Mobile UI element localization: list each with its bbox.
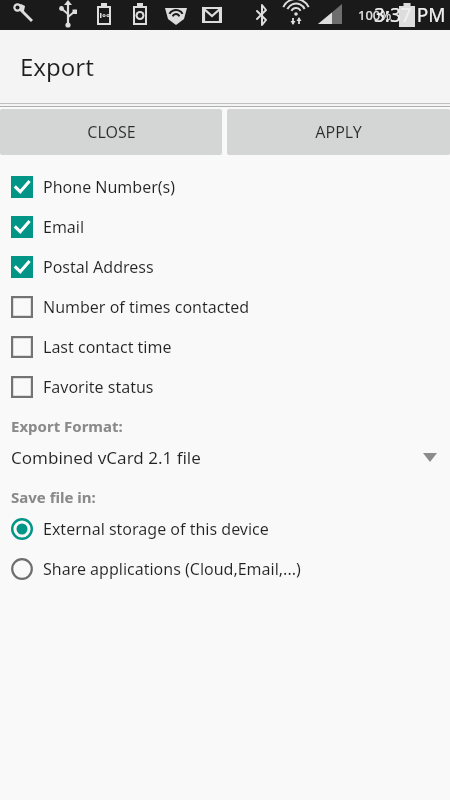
button[interactable]: Combined vCard 2.1 file	[0, 438, 450, 476]
button[interactable]: Last contact time	[0, 327, 450, 367]
staticText: 100%	[358, 6, 392, 24]
staticText: Number of times contacted	[43, 296, 250, 318]
staticText: Last contact time	[43, 336, 172, 358]
button[interactable]: Postal Address	[0, 247, 450, 287]
staticText: Favorite status	[43, 376, 154, 398]
button[interactable]: Phone Number(s)	[0, 167, 450, 207]
button[interactable]: Number of times contacted	[0, 287, 450, 327]
button[interactable]: CLOSE	[0, 109, 222, 155]
staticText: Phone Number(s)	[43, 176, 176, 198]
staticText: Share applications (Cloud,Email,...)	[43, 558, 301, 580]
staticText: Save file in:	[11, 487, 96, 507]
staticText: CLOSE	[87, 121, 136, 143]
button[interactable]: Favorite status	[0, 367, 450, 407]
staticText: 3:37 PM	[374, 2, 446, 28]
button[interactable]: APPLY	[227, 109, 450, 155]
staticText: APPLY	[315, 121, 362, 143]
staticText: Export	[20, 50, 94, 83]
button[interactable]: Share applications (Cloud,Email,...)	[0, 549, 450, 589]
staticText: Export Format:	[11, 416, 123, 436]
button[interactable]: Email	[0, 207, 450, 247]
button[interactable]: External storage of this device	[0, 509, 450, 549]
staticText: Email	[43, 216, 85, 238]
staticText: Postal Address	[43, 256, 154, 278]
staticText: Combined vCard 2.1 file	[11, 446, 201, 469]
staticText: External storage of this device	[43, 518, 269, 540]
